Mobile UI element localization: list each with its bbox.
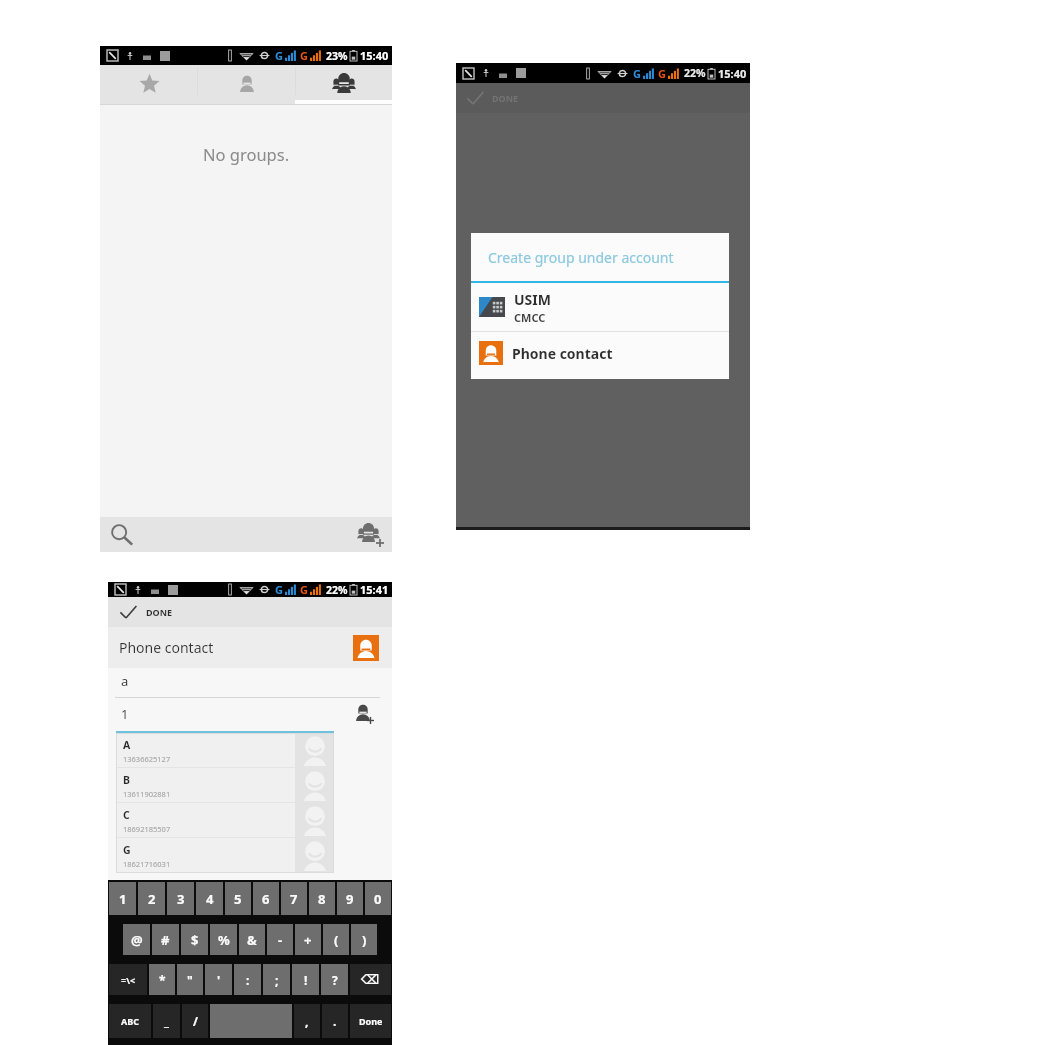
staticText: ": [187, 972, 193, 988]
button[interactable]: 2: [138, 882, 165, 915]
staticText: -: [278, 931, 283, 949]
staticText: 18621716031: [123, 859, 171, 869]
staticText: ;: [275, 972, 279, 988]
staticText: Done: [359, 1015, 383, 1027]
button[interactable]: -: [267, 924, 293, 955]
button[interactable]: =\<: [109, 964, 147, 995]
button[interactable]: $: [181, 924, 208, 955]
staticText: 18692185507: [123, 824, 171, 834]
button[interactable]: 8: [309, 882, 335, 915]
button[interactable]: Tab: [100, 65, 198, 104]
staticText: ?: [332, 972, 338, 988]
staticText: 4: [206, 890, 214, 908]
staticText: ,: [305, 1013, 309, 1029]
staticText: _: [164, 1013, 169, 1029]
button[interactable]: C: [116, 803, 334, 838]
staticText: 23%: [326, 49, 348, 63]
button[interactable]: +: [295, 924, 321, 955]
staticText: G: [658, 66, 666, 81]
button[interactable]: ;: [263, 964, 290, 995]
button[interactable]: !: [292, 964, 319, 995]
staticText: .: [333, 1013, 337, 1029]
button[interactable]: #: [152, 924, 179, 955]
staticText: G: [275, 582, 283, 597]
button[interactable]: ,: [294, 1004, 320, 1038]
staticText: *: [159, 972, 166, 988]
staticText: 15:40: [360, 48, 389, 63]
staticText: ): [362, 931, 367, 949]
button[interactable]: Phone contact: [471, 332, 729, 374]
staticText: @: [131, 931, 143, 949]
button[interactable]: :: [234, 964, 261, 995]
staticText: 2: [148, 890, 156, 908]
staticText: +: [304, 931, 312, 949]
staticText: A: [123, 738, 131, 752]
button[interactable]: G: [116, 838, 334, 873]
button[interactable]: Phone contact: [108, 627, 392, 668]
button[interactable]: B: [116, 768, 334, 803]
staticText: 22%: [326, 583, 348, 597]
staticText: C: [123, 808, 130, 822]
button[interactable]: 6: [253, 882, 279, 915]
staticText: (: [334, 931, 339, 949]
staticText: 3: [177, 890, 185, 908]
button[interactable]: %: [210, 924, 237, 955]
staticText: 0: [374, 890, 382, 908]
staticText: ': [217, 972, 221, 988]
button[interactable]: &: [239, 924, 265, 955]
staticText: G: [300, 582, 308, 597]
button[interactable]: ": [177, 964, 203, 995]
button[interactable]: ABC: [109, 1004, 151, 1038]
staticText: :: [246, 972, 250, 988]
staticText: 1: [121, 705, 129, 723]
staticText: Phone contact: [512, 344, 613, 363]
staticText: USIM: [514, 290, 551, 309]
button[interactable]: ?: [321, 964, 348, 995]
button[interactable]: 4: [196, 882, 223, 915]
staticText: !: [304, 972, 308, 988]
button[interactable]: @: [123, 924, 150, 955]
button[interactable]: Tab: [198, 65, 295, 104]
button[interactable]: ): [351, 924, 377, 955]
staticText: %: [218, 931, 230, 949]
button[interactable]: A: [116, 733, 334, 768]
button[interactable]: *: [149, 964, 175, 995]
staticText: ⌫: [361, 972, 380, 987]
staticText: 13611902881: [123, 789, 171, 799]
staticText: a: [121, 672, 129, 690]
staticText: 1: [119, 890, 127, 908]
staticText: 9: [346, 890, 354, 908]
staticText: #: [161, 931, 170, 949]
staticText: ABC: [121, 1015, 139, 1027]
staticText: DONE: [492, 92, 519, 104]
button[interactable]: 3: [167, 882, 194, 915]
button[interactable]: ': [205, 964, 232, 995]
staticText: Phone contact: [119, 638, 214, 657]
button[interactable]: /: [182, 1004, 208, 1038]
staticText: B: [123, 773, 130, 787]
staticText: 8: [318, 890, 326, 908]
button[interactable]: 7: [281, 882, 307, 915]
button[interactable]: _: [153, 1004, 180, 1038]
staticText: /: [193, 1013, 198, 1029]
button[interactable]: Done: [350, 1004, 391, 1038]
button[interactable]: Search: [109, 520, 135, 550]
staticText: Create group under account: [488, 248, 674, 267]
button[interactable]: (: [323, 924, 349, 955]
button[interactable]: 9: [337, 882, 363, 915]
button[interactable]: 0: [365, 882, 391, 915]
staticText: 15:41: [360, 582, 389, 597]
button[interactable]: ⌫: [350, 964, 391, 995]
staticText: 6: [262, 890, 270, 908]
staticText: &: [247, 931, 257, 949]
button[interactable]: USIM: [471, 283, 729, 331]
staticText: 13636625127: [123, 754, 171, 764]
staticText: CMCC: [514, 310, 546, 325]
button[interactable]: Groups tab: [295, 65, 392, 104]
staticText: No groups.: [203, 143, 290, 165]
button[interactable]: Add group: [356, 520, 386, 550]
button[interactable]: .: [322, 1004, 348, 1038]
button[interactable]: 5: [225, 882, 251, 915]
button[interactable]: 1: [109, 882, 136, 915]
